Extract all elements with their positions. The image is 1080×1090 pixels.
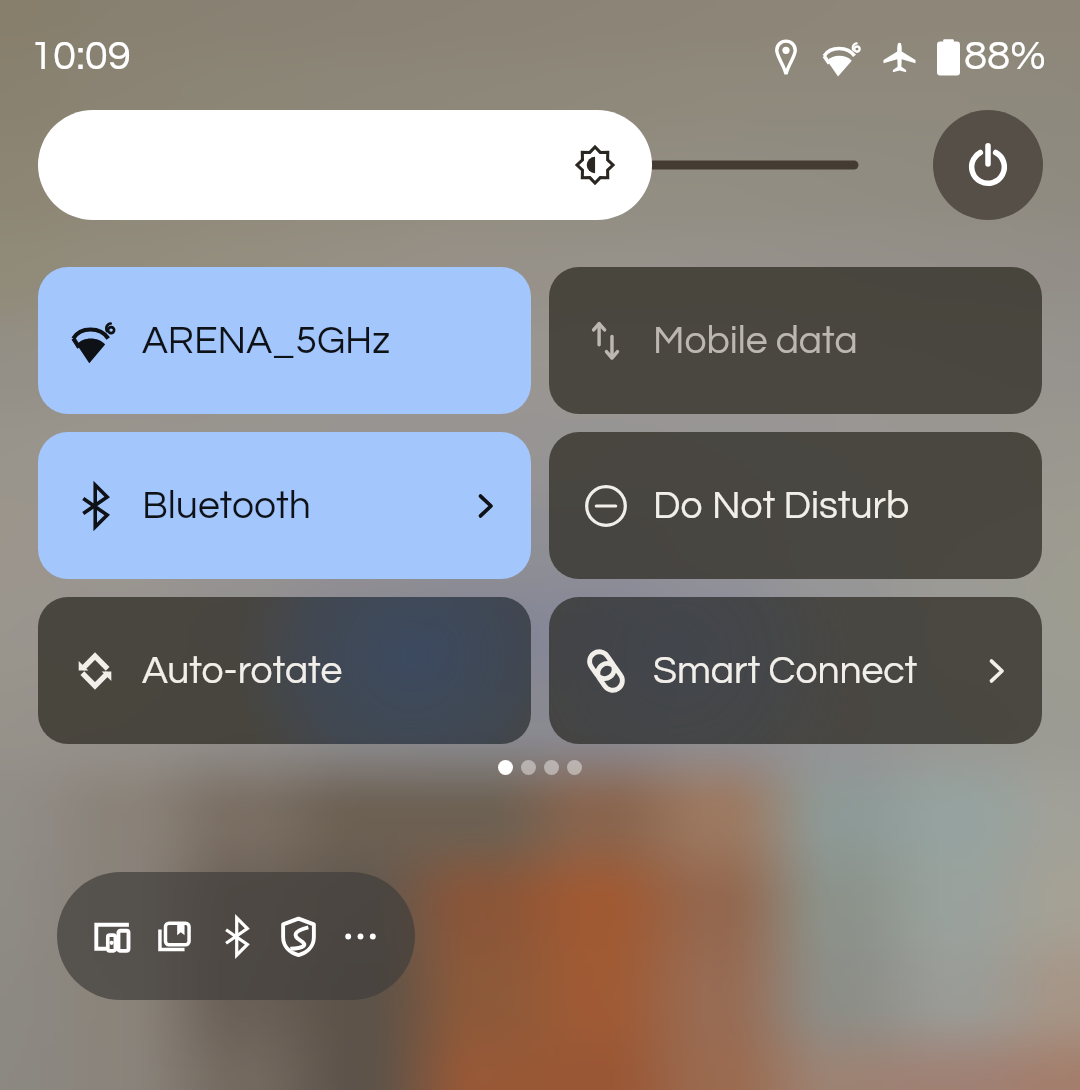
staticText: Bluetooth	[142, 486, 311, 526]
button[interactable]: Mobile data	[549, 267, 1042, 414]
button[interactable]: More	[329, 891, 391, 981]
staticText: Mobile data	[653, 321, 858, 361]
staticText: Auto-rotate	[142, 651, 343, 691]
staticText: 10:09	[30, 35, 131, 78]
button[interactable]: Bluetooth	[205, 891, 267, 981]
button[interactable]: Auto-rotate	[38, 597, 531, 744]
button[interactable]: Screenshot library	[143, 891, 205, 981]
button[interactable]: Connected devices	[81, 891, 143, 981]
staticText: ARENA_5GHz	[142, 321, 391, 361]
staticText: 88%	[964, 35, 1046, 78]
button[interactable]: ARENA_5GHz	[38, 267, 531, 414]
staticText: Smart Connect	[653, 651, 918, 691]
button[interactable]: Smart Connect	[549, 597, 1042, 744]
button[interactable]: Device security	[267, 891, 329, 981]
button[interactable]	[38, 110, 860, 220]
button[interactable]: Power	[933, 110, 1043, 220]
staticText: Do Not Disturb	[653, 486, 910, 526]
button[interactable]: Bluetooth	[38, 432, 531, 579]
button[interactable]: Do Not Disturb	[549, 432, 1042, 579]
